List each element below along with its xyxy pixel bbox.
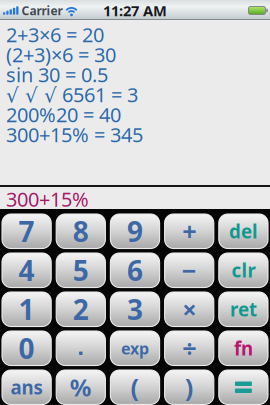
staticText: 2 [73,291,89,328]
staticText: 8 [73,213,89,250]
button[interactable]: decimal point [56,331,105,365]
staticText: − [182,253,197,287]
staticText: 9 [127,213,143,250]
staticText: clr [231,258,255,283]
staticText: √ √ √ 6561 = 3 [6,81,138,108]
staticText: sin 30 = 0.5 [6,61,108,88]
staticText: 0 [19,330,35,367]
button[interactable]: 8 [56,214,105,248]
button[interactable]: 4 [2,253,51,287]
staticText: (2+3)×6 = 30 [6,41,116,68]
button[interactable]: fn [219,331,268,365]
button[interactable]: 0 [2,331,51,365]
staticText: ( [130,370,139,404]
staticText: 5 [73,252,89,289]
staticText: 6 [127,252,143,289]
staticText: ) [185,370,194,404]
staticText: ans [11,375,43,400]
button[interactable]: ÷ [165,331,214,365]
button[interactable]: del [219,214,268,248]
staticText: ÷ [182,331,196,365]
button[interactable]: ans [2,370,51,404]
staticText: 7 [19,213,35,250]
staticText: del [229,219,258,244]
button[interactable]: exp [110,331,160,365]
staticText: + [182,214,196,248]
button[interactable]: equals [219,370,268,404]
button[interactable]: 3 [110,292,160,326]
staticText: fn [234,336,253,361]
button[interactable]: % [56,370,105,404]
staticText: 200%20 = 40 [6,101,121,128]
staticText: × [182,292,196,326]
button[interactable]: 1 [2,292,51,326]
button[interactable]: ret [219,292,268,326]
button[interactable]: 7 [2,214,51,248]
staticText: 300+15% [6,186,89,212]
button[interactable]: ) [165,370,214,404]
button[interactable]: 2 [56,292,105,326]
staticText: 3 [127,291,143,328]
staticText: 300+15% = 345 [6,121,143,148]
button[interactable]: × [165,292,214,326]
button[interactable]: ( [110,370,160,404]
button[interactable]: 6 [110,253,160,287]
staticText: exp [121,338,149,359]
staticText: Carrier [21,2,62,18]
button[interactable]: 5 [56,253,105,287]
button[interactable]: − [165,253,214,287]
staticText: % [70,371,92,403]
staticText: 2+3×6 = 20 [6,21,104,48]
staticText: 4 [19,252,35,289]
button[interactable]: clr [219,253,268,287]
staticText: 11:27 AM [103,1,167,20]
staticText: 1 [19,291,35,328]
button[interactable]: + [165,214,214,248]
staticText: ret [230,297,257,322]
button[interactable]: 9 [110,214,160,248]
